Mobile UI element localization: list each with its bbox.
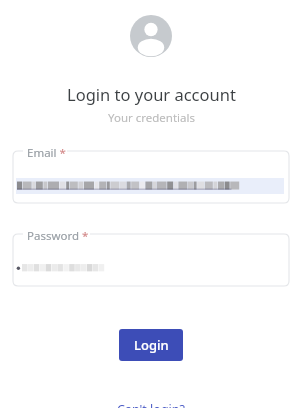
button[interactable]: Email * [12, 146, 290, 204]
other: Account avatar [130, 15, 172, 57]
staticText: Login [134, 336, 169, 354]
button[interactable]: Can't login? [111, 399, 191, 410]
staticText: Login to your account [67, 83, 236, 105]
staticText: Your credentials [108, 110, 195, 126]
staticText: Can't login? [117, 401, 185, 408]
button[interactable]: Login [119, 329, 183, 361]
staticText: Password * [27, 228, 89, 244]
staticText: Email * [27, 145, 66, 161]
button[interactable]: Password * [12, 229, 290, 287]
